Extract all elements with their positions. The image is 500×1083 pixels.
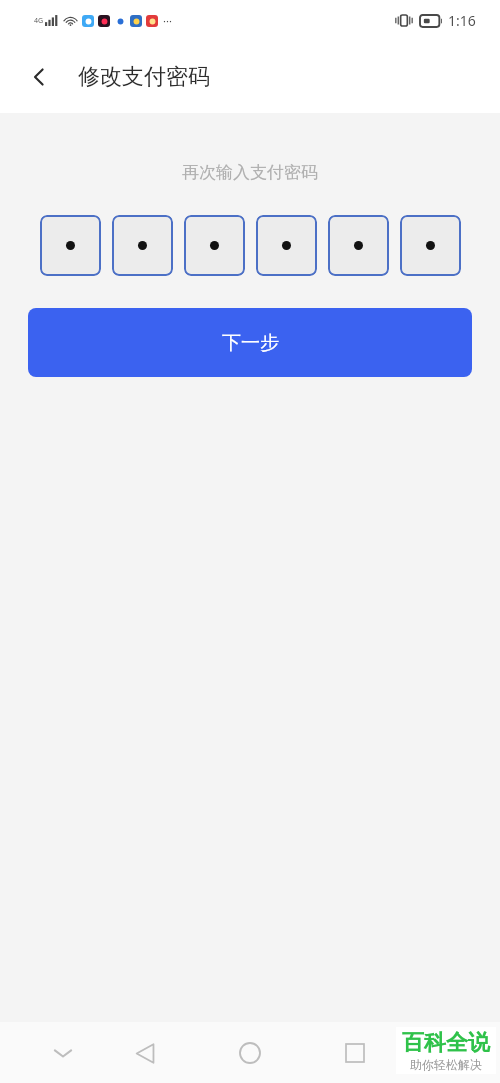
button[interactable]: PIN digit	[256, 215, 317, 276]
button[interactable]: PIN digit	[40, 215, 101, 276]
button[interactable]: Back	[120, 1028, 170, 1078]
staticText: 1:16	[448, 11, 476, 30]
button[interactable]: PIN digit	[184, 215, 245, 276]
staticText: 4G	[34, 16, 44, 26]
button[interactable]: Back	[18, 56, 60, 98]
button[interactable]: PIN digit	[328, 215, 389, 276]
staticText: 助你轻松解决	[410, 1057, 482, 1072]
staticText: 百科全说	[402, 1029, 490, 1057]
button[interactable]: PIN digit	[400, 215, 461, 276]
button[interactable]: 下一步	[28, 308, 472, 377]
button[interactable]: Home	[225, 1028, 275, 1078]
staticText: 修改支付密码	[78, 63, 210, 91]
staticText: ···	[163, 13, 172, 28]
staticText: 下一步	[222, 331, 279, 355]
button[interactable]: Hide keyboard	[38, 1028, 88, 1078]
button[interactable]: PIN digit	[112, 215, 173, 276]
button[interactable]: Recents	[330, 1028, 380, 1078]
staticText: 再次输入支付密码	[182, 162, 318, 183]
